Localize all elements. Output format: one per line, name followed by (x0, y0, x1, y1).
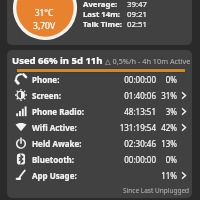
staticText: △ 0,5%/h - 4h 10m Active (105, 56, 191, 66)
staticText: Since Last Unplugged (123, 186, 190, 195)
staticText: Wifi Active: (32, 122, 77, 133)
staticText: 3,70V (24, 20, 64, 32)
staticText: Bluetooth: (32, 154, 75, 165)
staticText: Screen: (32, 90, 61, 101)
staticText: Used 66% in 5d 11h (12, 54, 103, 67)
staticText: 42% (156, 122, 177, 133)
button[interactable]: App Usage (7, 167, 192, 183)
staticText: 00:00:00 (114, 74, 156, 85)
staticText: Phone Radio: (32, 106, 84, 117)
staticText: Average: (83, 0, 127, 9)
button[interactable]: Phone (7, 71, 192, 87)
staticText: 01:40:06 (114, 90, 156, 101)
staticText: 31°C (24, 7, 64, 19)
staticText: 31% (156, 90, 177, 101)
staticText: App Usage: (32, 170, 77, 181)
other: Bluetooth (15, 153, 27, 165)
other: Phone Radio (15, 105, 27, 117)
other: Wifi (15, 121, 27, 133)
staticText: Held Awake: (32, 138, 82, 149)
button[interactable]: Screen (7, 87, 192, 103)
staticText: 00:00:00 (114, 154, 156, 165)
staticText: 131:19:54 (114, 122, 156, 133)
other: Screen (15, 89, 27, 101)
staticText: 13% (156, 138, 177, 149)
staticText: Talk Time: (83, 19, 127, 29)
other: App Usage (15, 169, 27, 181)
staticText: 09:21 (127, 9, 147, 19)
button[interactable]: Bluetooth (7, 151, 192, 167)
button[interactable]: Held Awake (7, 135, 192, 151)
button[interactable]: Phone Radio (7, 103, 192, 119)
staticText: 02:51 (127, 19, 147, 29)
staticText: 02:30:46 (114, 138, 156, 149)
staticText: 39:47 (127, 0, 147, 9)
staticText: Last 14m: (83, 9, 127, 19)
staticText: 11% (156, 170, 177, 181)
staticText: 0% (156, 74, 177, 85)
button[interactable]: Wifi (7, 119, 192, 135)
staticText: 3% (156, 106, 177, 117)
staticText: Phone: (32, 74, 60, 85)
staticText: 48:13:51 (114, 106, 156, 117)
other: Phone (15, 73, 27, 85)
staticText: 0% (156, 154, 177, 165)
other: Held Awake (15, 137, 27, 149)
